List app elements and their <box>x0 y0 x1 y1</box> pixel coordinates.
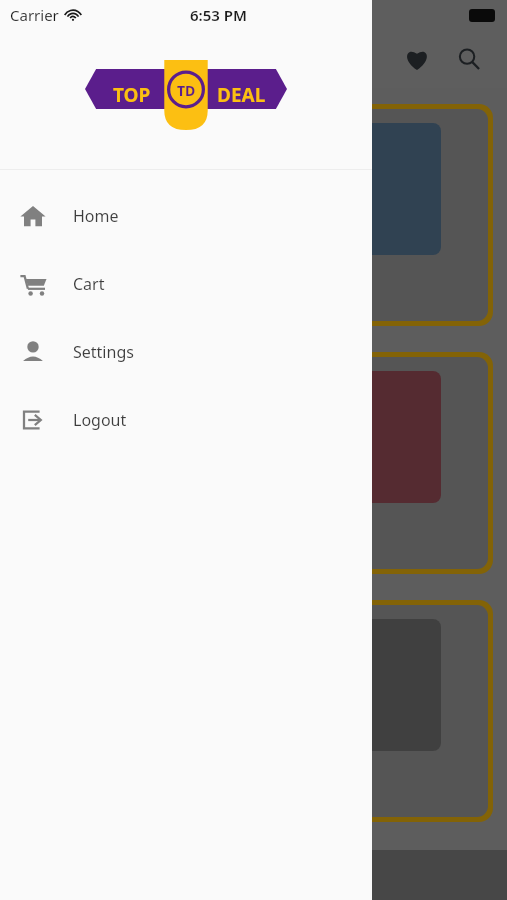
button[interactable]: Appliances <box>19 605 488 817</box>
staticText: Carrier <box>10 5 59 25</box>
staticText: TOP <box>113 82 151 108</box>
staticText: Motorcycle <box>33 260 137 287</box>
staticText: 6:53 PM <box>190 5 247 25</box>
button[interactable]: Flowers <box>19 357 488 569</box>
staticText: DEAL <box>217 82 266 108</box>
staticText: Settings <box>73 341 134 363</box>
button[interactable]: Logout <box>0 386 372 454</box>
button[interactable]: Settings <box>0 318 372 386</box>
button[interactable]: Cart <box>0 250 372 318</box>
button[interactable]: Search <box>449 39 489 79</box>
staticText: Cart <box>73 273 105 295</box>
button[interactable]: Motorcycle <box>19 109 488 321</box>
staticText: TD <box>177 81 196 100</box>
button[interactable]: Favorites <box>397 39 437 79</box>
staticText: Logout <box>73 409 127 431</box>
staticText: Home <box>73 205 119 227</box>
button[interactable]: Home <box>0 182 372 250</box>
